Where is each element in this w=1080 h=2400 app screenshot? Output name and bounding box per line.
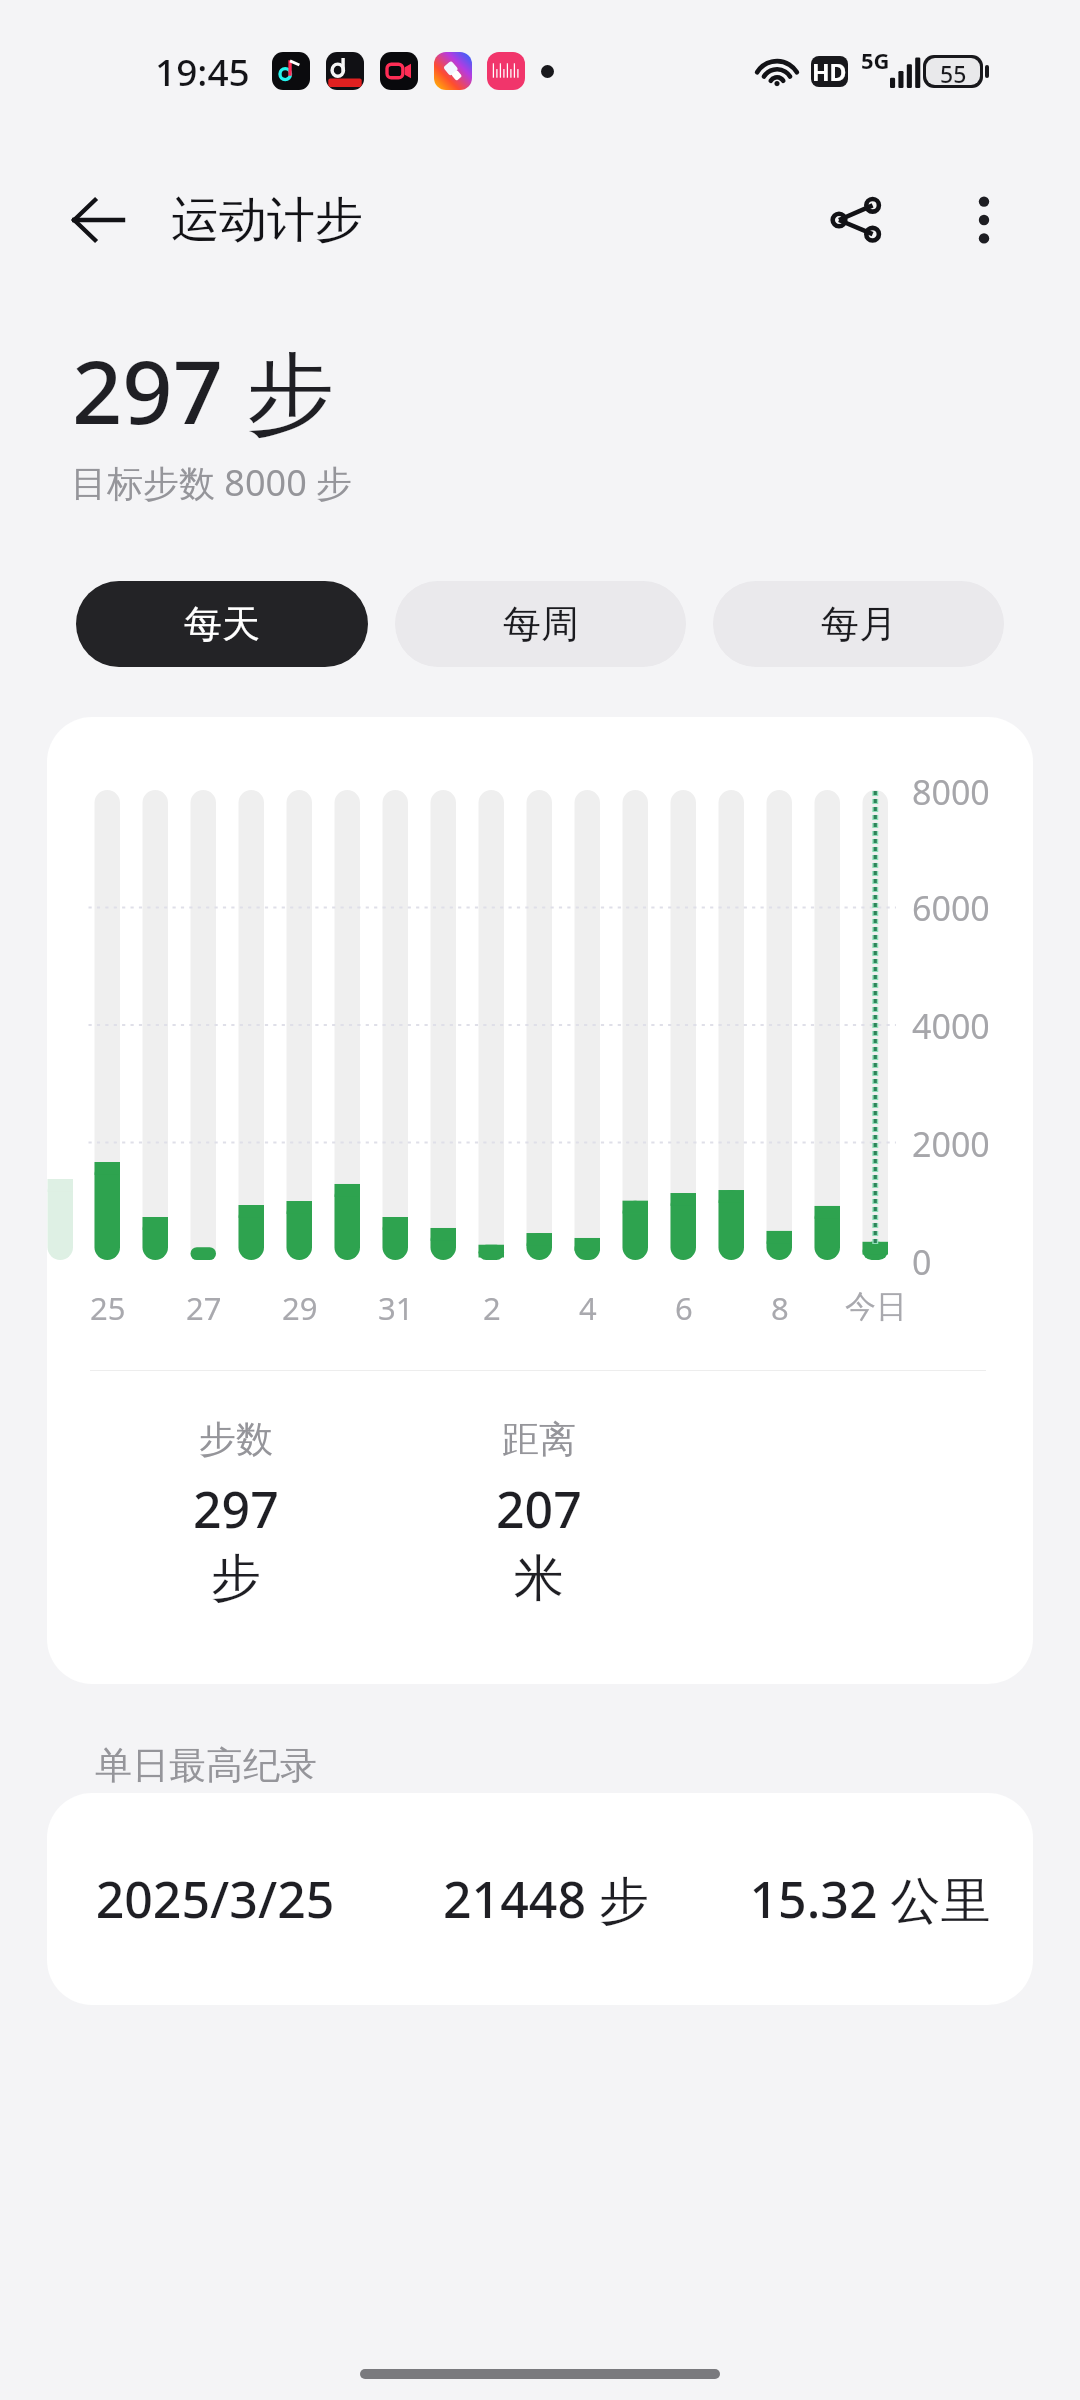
staticText: 25 — [90, 1287, 126, 1329]
staticText: 米 — [514, 1547, 564, 1610]
staticText: 距离 — [502, 1416, 576, 1463]
staticText: 15.32 公里 — [745, 1865, 995, 1933]
staticText: 2000 — [912, 1121, 990, 1167]
staticText: 21448 步 — [436, 1865, 656, 1933]
staticText: 每天 — [184, 600, 260, 648]
staticText: 5G — [861, 45, 890, 75]
button[interactable]: Back — [58, 180, 138, 260]
staticText: 每月 — [821, 600, 897, 648]
staticText: 2025/3/25 — [75, 1865, 355, 1933]
button[interactable]: 2025/3/25 — [47, 1793, 1033, 2005]
staticText: 4000 — [912, 1003, 990, 1049]
staticText: 207 — [496, 1475, 582, 1543]
staticText: 297 步 — [72, 330, 334, 450]
staticText: 6 — [675, 1287, 693, 1329]
staticText: 27 — [186, 1287, 222, 1329]
staticText: 55 — [940, 58, 967, 85]
staticText: 运动计步 — [171, 190, 363, 250]
button[interactable]: 每周 — [395, 581, 686, 667]
staticText: 297 — [193, 1475, 279, 1543]
button[interactable]: 每月 — [713, 581, 1004, 667]
button[interactable]: Share — [815, 178, 899, 262]
staticText: 2 — [483, 1287, 501, 1329]
staticText: 8 — [771, 1287, 789, 1329]
staticText: 步数 — [199, 1416, 273, 1463]
staticText: 6000 — [912, 885, 990, 931]
button[interactable]: More options — [942, 178, 1026, 262]
button[interactable]: 每天 — [76, 581, 368, 667]
staticText: 8000 — [912, 769, 990, 815]
staticText: 今日 — [845, 1287, 907, 1326]
staticText: 0 — [912, 1239, 932, 1285]
staticText: 每周 — [503, 600, 579, 648]
staticText: 单日最高纪录 — [95, 1742, 317, 1789]
staticText: 31 — [378, 1287, 414, 1329]
staticText: 19:45 — [155, 46, 250, 96]
staticText: 4 — [579, 1287, 597, 1329]
staticText: HD — [812, 56, 847, 87]
staticText: 29 — [282, 1287, 318, 1329]
staticText: 步 — [211, 1547, 261, 1610]
staticText: 目标步数 8000 步 — [71, 458, 353, 507]
